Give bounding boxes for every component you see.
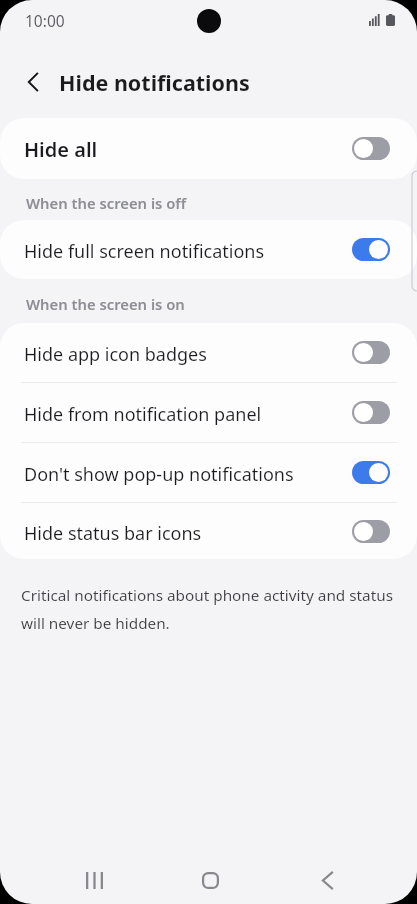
button[interactable]: Back [295, 852, 359, 904]
button[interactable]: Home [178, 852, 242, 904]
staticText: Don't show pop-up notifications [24, 462, 352, 487]
button[interactable]: On [352, 461, 390, 484]
button[interactable]: Hide app icon badges [0, 323, 417, 382]
button[interactable]: Don't show pop-up notifications [0, 443, 417, 502]
staticText: 10:00 [25, 10, 65, 31]
staticText: Hide status bar icons [24, 521, 352, 546]
button[interactable]: Hide status bar icons [0, 503, 417, 559]
button[interactable]: Hide full screen notifications [0, 220, 417, 279]
staticText: Critical notifications about phone activ… [21, 585, 409, 633]
staticText: When the screen is off [26, 193, 187, 213]
staticText: Hide full screen notifications [24, 239, 352, 264]
staticText: Hide all [24, 136, 352, 163]
button[interactable]: On [352, 238, 390, 261]
button[interactable]: Off [352, 341, 390, 364]
button[interactable]: Off [352, 401, 390, 424]
button[interactable]: Recents [62, 852, 126, 904]
staticText: Hide app icon badges [24, 342, 352, 367]
button[interactable]: Off [352, 137, 390, 160]
staticText: Hide notifications [59, 68, 250, 97]
staticText: When the screen is on [26, 294, 185, 314]
button[interactable]: Off [352, 520, 390, 543]
staticText: Hide from notification panel [24, 402, 352, 427]
button[interactable]: Hide all [0, 118, 417, 179]
button[interactable]: Hide from notification panel [0, 383, 417, 442]
button[interactable]: Back [12, 60, 56, 104]
